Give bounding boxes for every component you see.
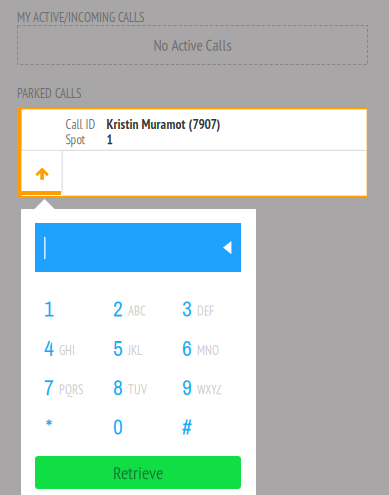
staticText: 7 (44, 373, 54, 402)
staticText: 2 (113, 294, 123, 323)
staticText: * (45, 412, 52, 441)
staticText: 8 (113, 373, 123, 402)
staticText: Kristin Muramot (7907) (107, 115, 221, 133)
staticText: MNO (197, 342, 219, 358)
button[interactable]: Retrieve parked call (22, 151, 62, 196)
button[interactable]: # (173, 411, 242, 450)
staticText: 0 (113, 412, 123, 441)
staticText: PQRS (59, 381, 83, 398)
staticText: ABC (128, 303, 146, 319)
button[interactable]: 9 (173, 371, 242, 411)
staticText: MY ACTIVE/INCOMING CALLS (17, 9, 144, 25)
button[interactable]: 5 (104, 332, 173, 371)
button[interactable]: 8 (104, 371, 173, 411)
button[interactable]: 4 (35, 332, 104, 371)
staticText: JKL (128, 342, 142, 358)
staticText: # (182, 412, 192, 441)
staticText: 9 (182, 373, 192, 402)
button[interactable]: 6 (173, 332, 242, 371)
staticText: 4 (44, 334, 54, 362)
button[interactable]: 3 (173, 293, 242, 332)
button[interactable]: Delete (223, 241, 231, 254)
staticText: GHI (59, 342, 75, 358)
staticText: TUV (128, 381, 147, 398)
button[interactable]: 2 (104, 293, 173, 332)
staticText: DEF (197, 303, 214, 319)
staticText: 1 (107, 131, 113, 148)
staticText: No Active Calls (153, 35, 231, 55)
button[interactable]: 1 (35, 293, 104, 332)
staticText: Call ID (66, 116, 96, 132)
button[interactable]: Retrieve (35, 456, 241, 489)
staticText: 1 (44, 294, 54, 323)
staticText: PARKED CALLS (17, 85, 81, 101)
staticText: 6 (182, 334, 192, 362)
button[interactable]: 0 (104, 411, 173, 450)
button[interactable]: 7 (35, 371, 104, 411)
staticText: 5 (113, 334, 123, 362)
staticText: WXYZ (197, 381, 222, 398)
staticText: Retrieve (113, 461, 163, 484)
staticText: 3 (182, 294, 192, 323)
staticText: Spot (66, 131, 85, 148)
button[interactable]: * (35, 411, 104, 450)
